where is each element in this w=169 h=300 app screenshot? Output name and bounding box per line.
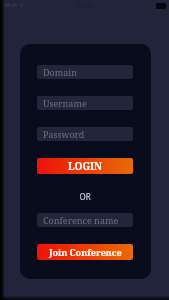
staticText: Username xyxy=(43,97,87,109)
button[interactable]: Password xyxy=(37,127,133,141)
button[interactable]: Join Conference xyxy=(37,244,133,260)
button[interactable]: Conference name xyxy=(37,213,133,227)
staticText: Domain xyxy=(43,66,77,78)
staticText: Conference name xyxy=(43,214,119,226)
button[interactable]: Domain xyxy=(37,65,133,79)
button[interactable]: Username xyxy=(37,96,133,110)
button[interactable]: LOGIN xyxy=(37,158,133,174)
staticText: OR xyxy=(79,191,91,202)
staticText: LOGIN xyxy=(68,159,102,173)
staticText: Join Conference xyxy=(49,246,122,258)
staticText: Password xyxy=(43,128,85,140)
